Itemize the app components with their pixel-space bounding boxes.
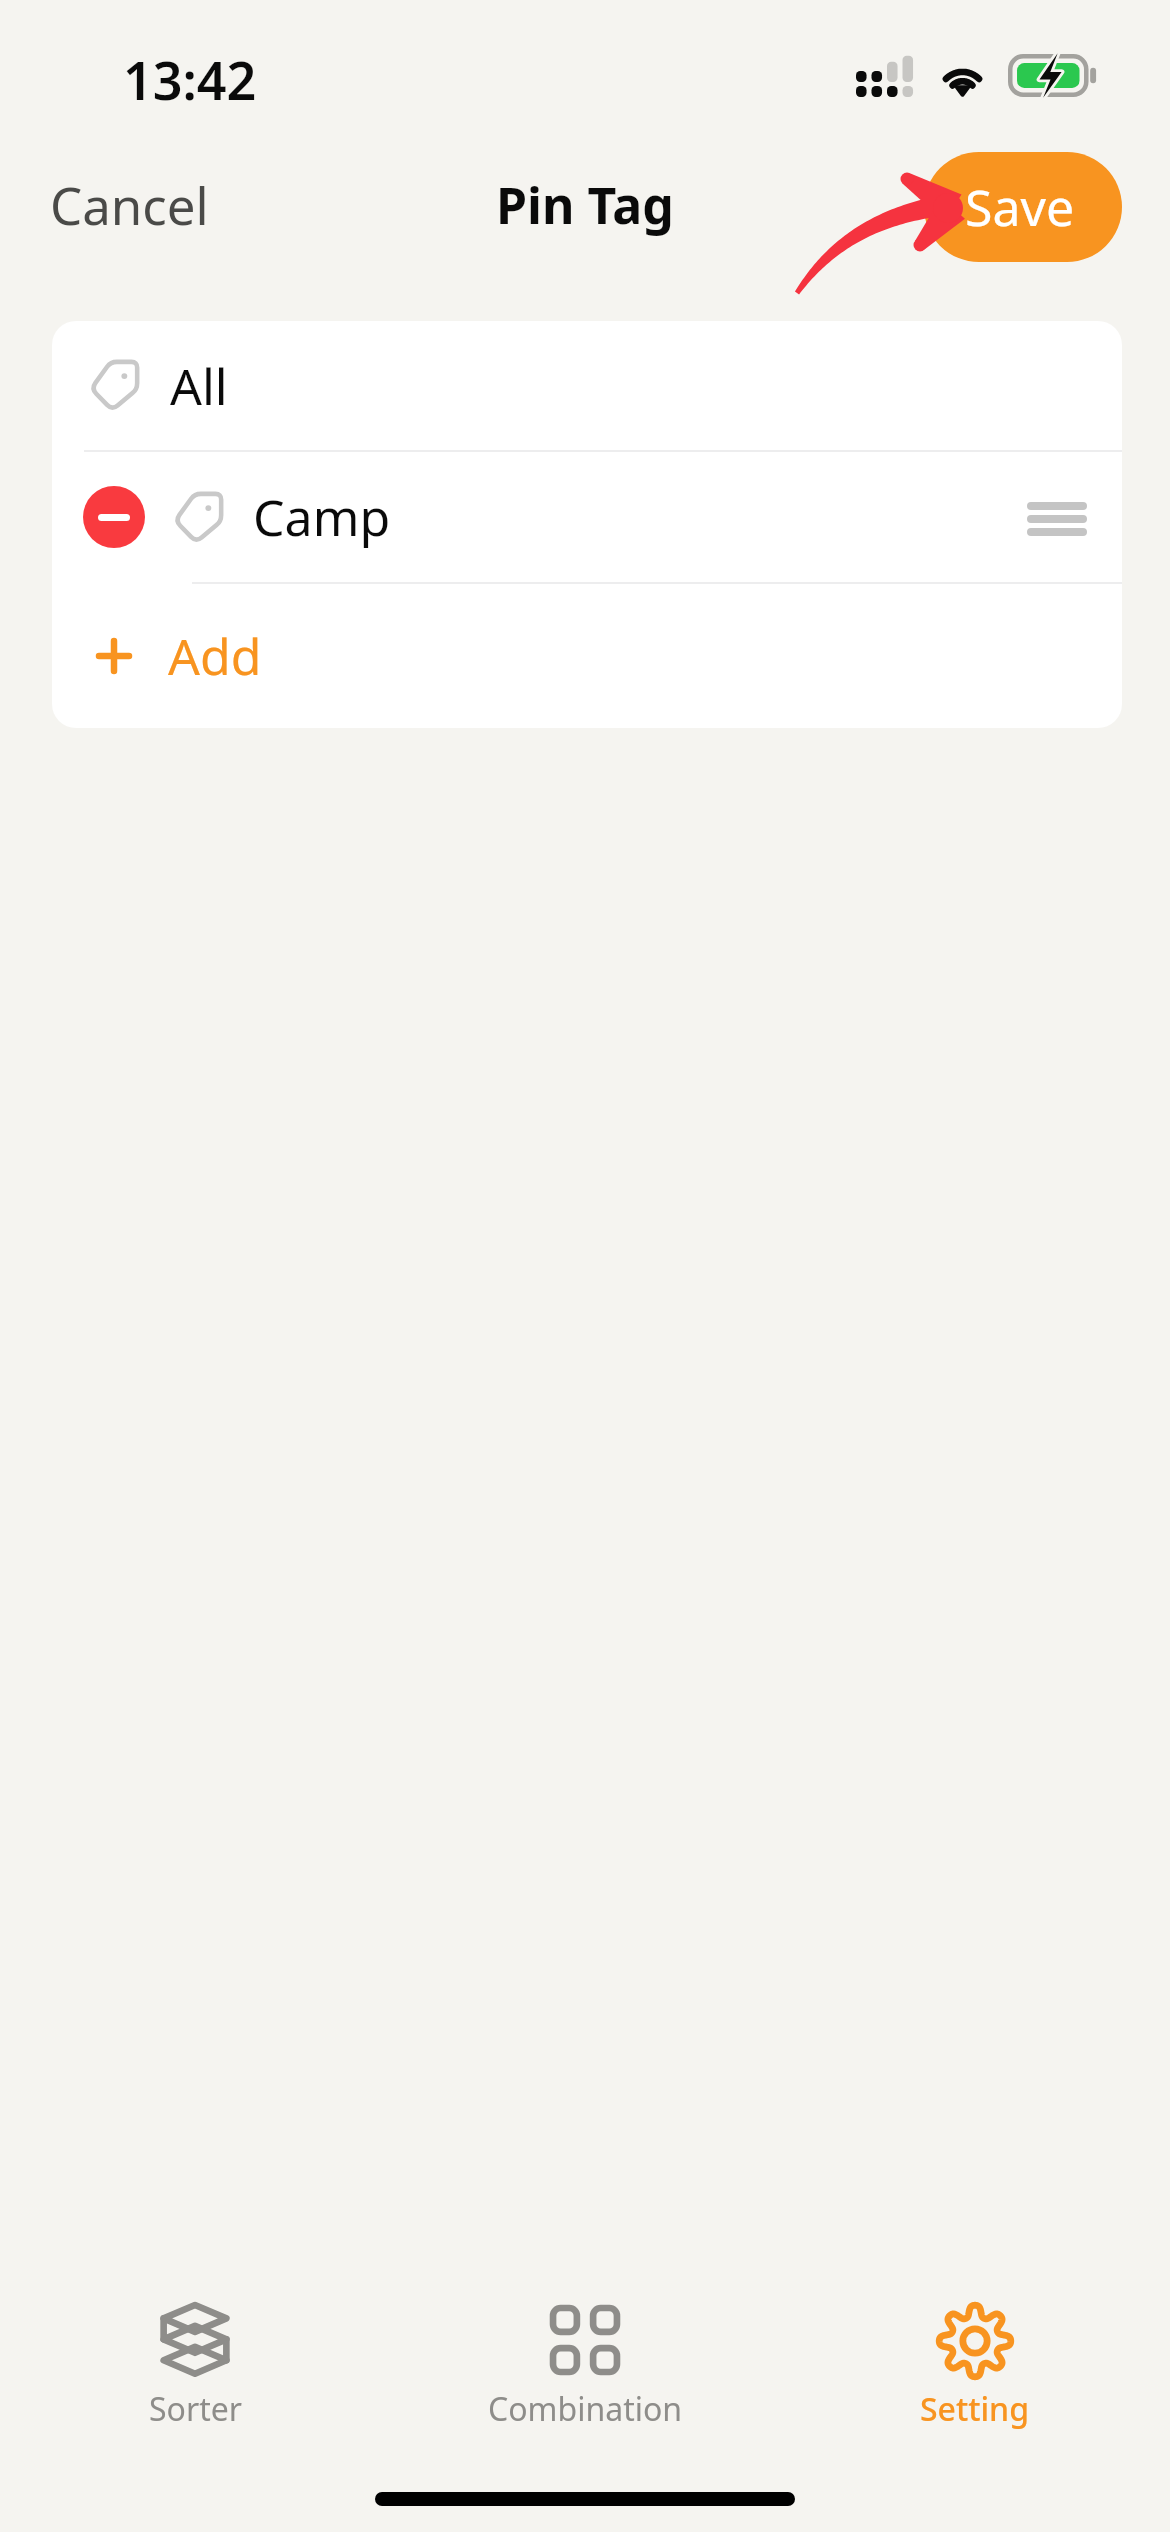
staticText: Camp (253, 483, 391, 551)
staticText: Combination (488, 2387, 683, 2431)
staticText: Setting (920, 2387, 1030, 2431)
button[interactable]: Setting (780, 2304, 1170, 2431)
button[interactable]: Save (924, 152, 1122, 262)
button[interactable]: All (52, 321, 1122, 450)
button[interactable]: Combination (390, 2304, 780, 2431)
staticText: Save (965, 173, 1075, 241)
button[interactable]: Sorter (0, 2304, 390, 2431)
button[interactable]: Reorder (1002, 462, 1112, 572)
button[interactable]: Remove tag (52, 452, 1122, 582)
staticText: Pin Tag (496, 171, 674, 239)
staticText: Add (168, 622, 262, 690)
staticText: 13:42 (123, 44, 257, 115)
staticText: Sorter (149, 2387, 242, 2431)
button[interactable]: Add (52, 584, 1122, 728)
staticText: All (170, 352, 228, 420)
staticText: Cancel (50, 170, 209, 239)
button[interactable]: Remove tag (83, 486, 145, 548)
button[interactable]: Cancel (40, 162, 219, 247)
